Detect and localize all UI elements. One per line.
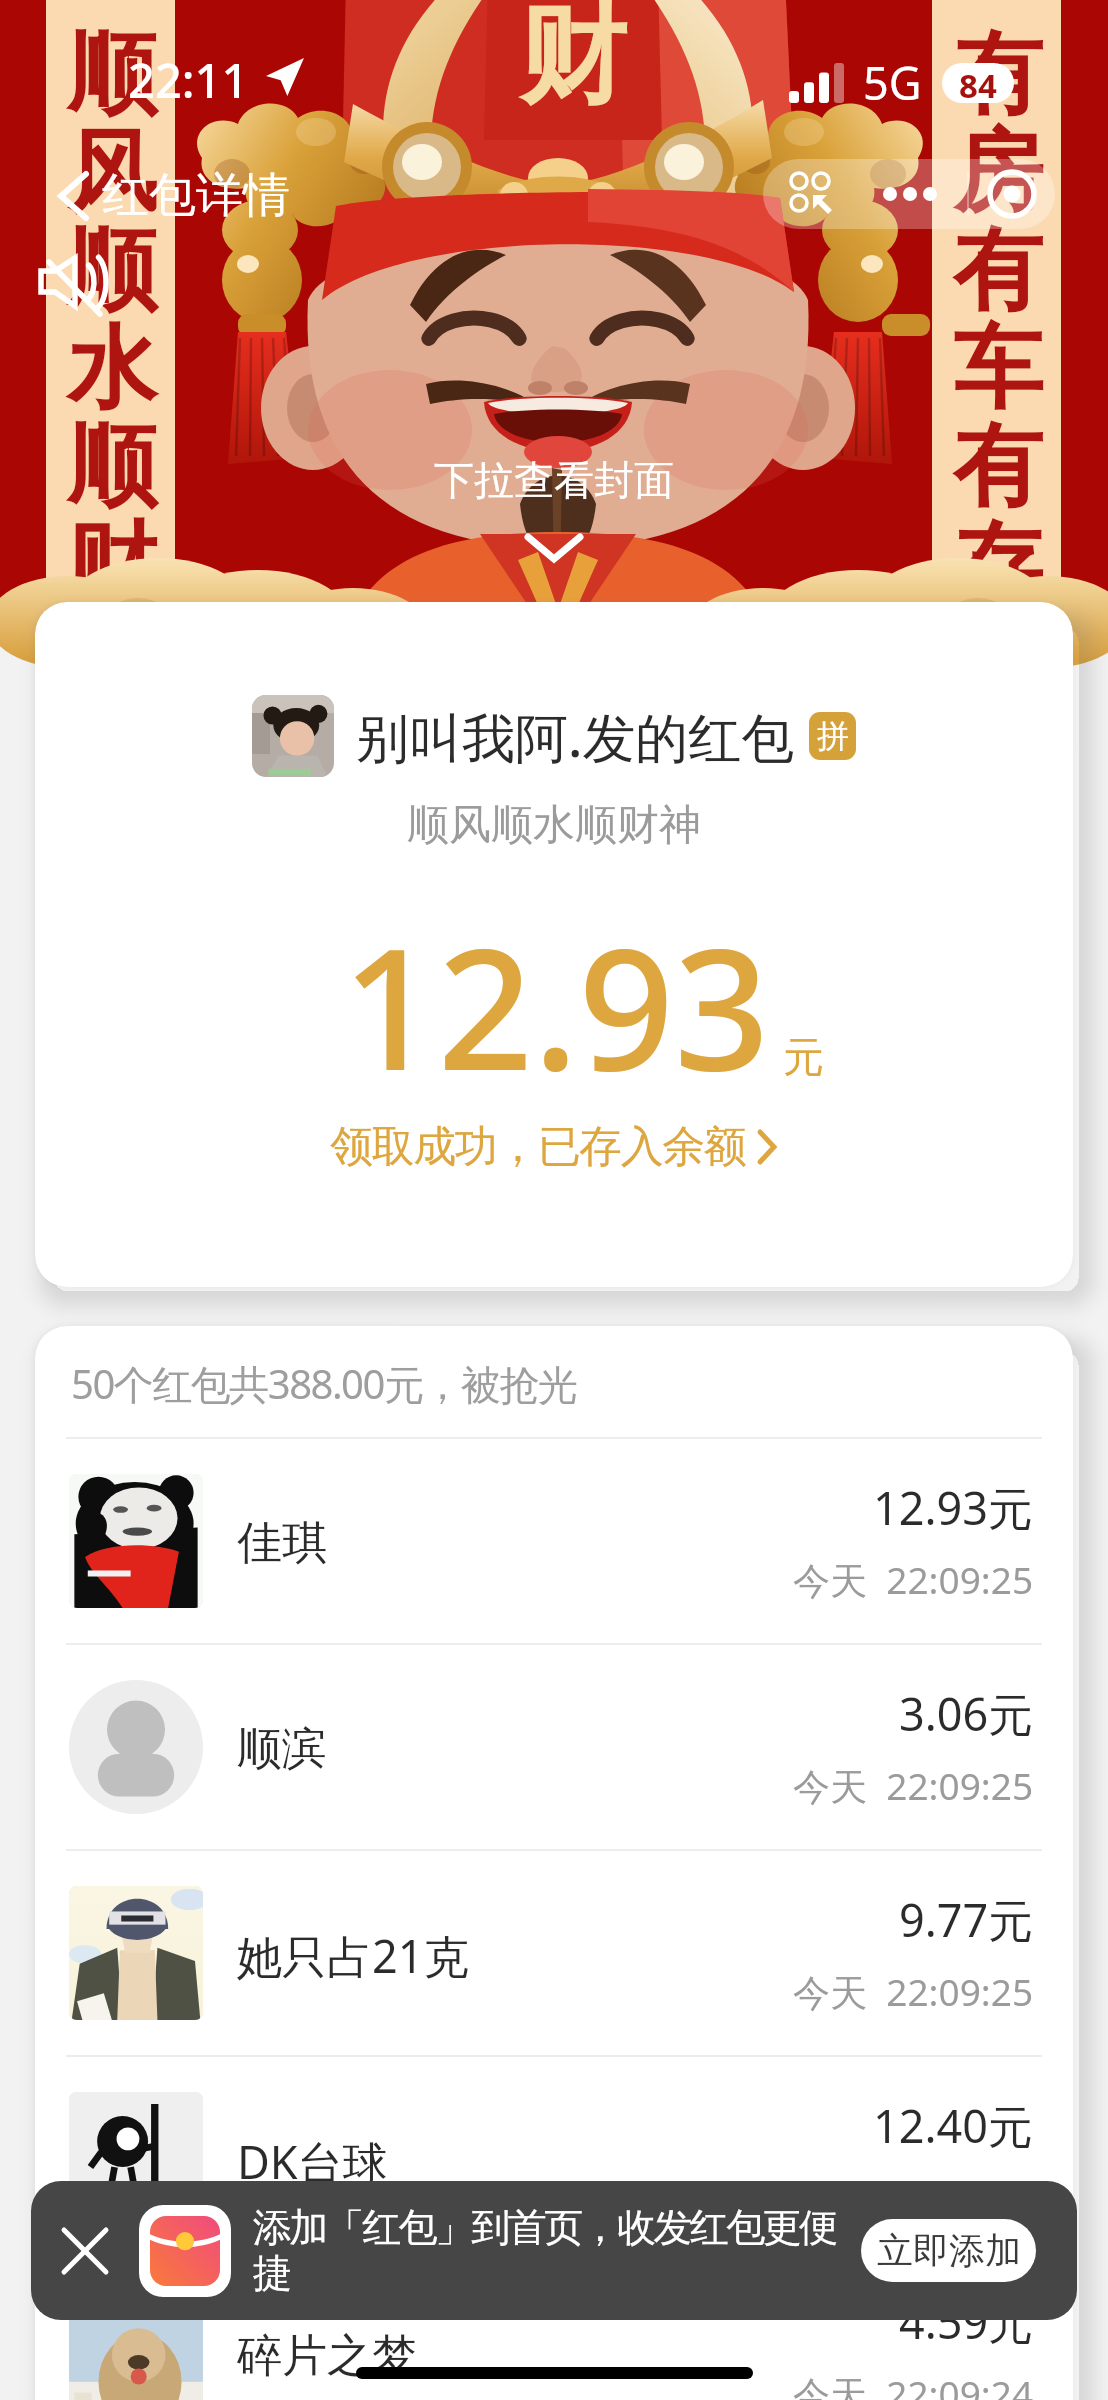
button[interactable]: Close (969, 159, 1055, 229)
button[interactable]: Dismiss (31, 2181, 139, 2320)
staticText: 有 (950, 410, 1046, 523)
staticText: 顺风顺水顺财神 (407, 799, 701, 852)
staticText: 84 (959, 63, 997, 103)
staticText: 添加「红包」到首页，收发红包更便 捷 (253, 2203, 836, 2299)
staticText: 有 (950, 18, 1046, 131)
staticText: 元 (783, 1032, 824, 1084)
button[interactable]: 佳琪 (35, 1439, 1073, 1643)
staticText: 下拉查看封面 (434, 455, 674, 505)
staticText: 车 (950, 312, 1046, 425)
button[interactable]: 碎片之梦 (35, 2263, 1073, 2400)
staticText: 12.40元 (873, 2095, 1034, 2156)
button[interactable]: 红包详情 (48, 162, 298, 229)
staticText: 财 (64, 508, 160, 621)
staticText: 50个红包共388.00元，被抢光 (71, 1356, 577, 1411)
staticText: 财 (519, 0, 627, 124)
button[interactable]: Scan (763, 159, 861, 229)
staticText: 房 (950, 116, 1046, 229)
button[interactable]: 立即添加 (861, 2219, 1036, 2282)
staticText: 碎片之梦 (237, 2328, 417, 2385)
staticText: 存 (950, 508, 1046, 621)
staticText: 拼 (817, 716, 849, 756)
staticText: 今天 22:09:25 (793, 1554, 1034, 1605)
staticText: 领取成功，已存入余额 (331, 1120, 746, 1174)
staticText: 她只占21克 (237, 1925, 469, 1986)
staticText: 4.59元 (899, 2291, 1034, 2352)
button[interactable]: 领取成功，已存入余额 (321, 1114, 788, 1180)
button[interactable]: More options (861, 159, 959, 229)
staticText: 12.93 (342, 891, 770, 1118)
button[interactable]: 顺滨 (35, 1645, 1073, 1849)
staticText: 立即添加 (877, 2228, 1021, 2273)
staticText: 5G (863, 52, 922, 113)
staticText: 今天 22:09:24 (793, 2368, 1034, 2400)
staticText: DK台球 (237, 2131, 388, 2192)
staticText: 3.06元 (899, 1683, 1034, 1744)
staticText: 风 (64, 116, 160, 229)
staticText: 顺 (64, 214, 160, 327)
button[interactable]: 她只占21克 (35, 1851, 1073, 2055)
button[interactable]: DK台球 (35, 2057, 1073, 2261)
staticText: 顺 (64, 18, 160, 131)
staticText: 别叫我阿.发的红包 (356, 700, 795, 772)
staticText: 顺 (64, 410, 160, 523)
staticText: 红包详情 (102, 166, 290, 225)
staticText: 今天 22:09:25 (793, 1966, 1034, 2017)
button[interactable]: Mute (34, 250, 112, 324)
staticText: 顺滨 (237, 1721, 327, 1778)
staticText: 9.77元 (899, 1889, 1034, 1950)
staticText: 12.93元 (873, 1477, 1034, 1538)
staticText: 有 (950, 214, 1046, 327)
staticText: 今天 22:09:25 (793, 1760, 1034, 1811)
staticText: 22:11 (128, 48, 249, 112)
staticText: 今天 22:09:24 (793, 2172, 1034, 2223)
staticText: 水 (64, 312, 160, 425)
staticText: 佳琪 (237, 1515, 327, 1572)
